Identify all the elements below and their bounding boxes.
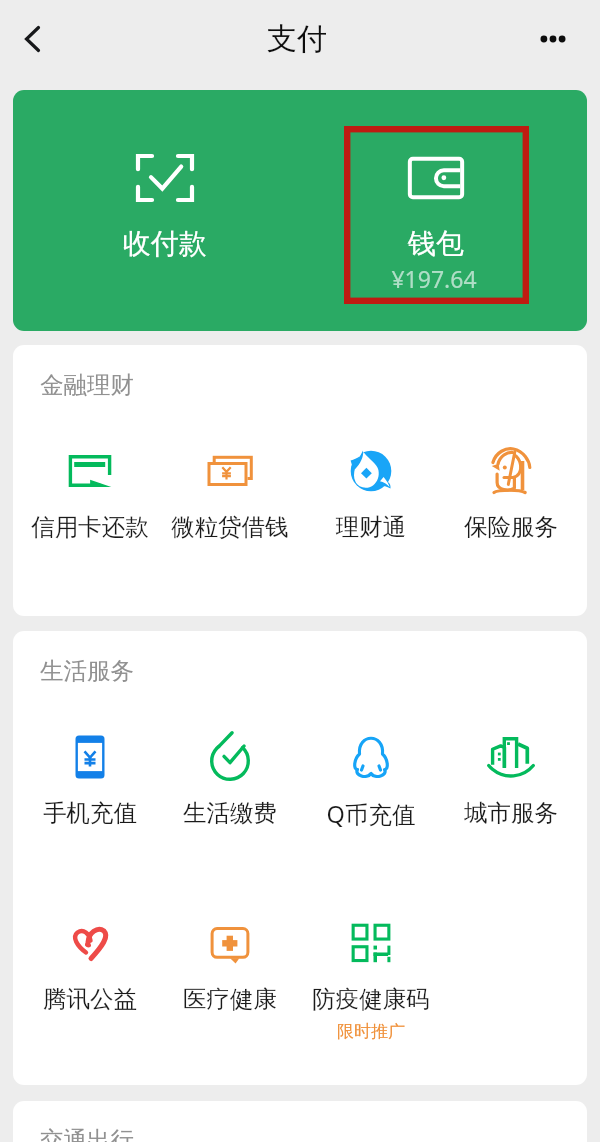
staticText: 微粒贷借钱: [160, 512, 300, 542]
button[interactable]: Q币充值: [301, 713, 441, 825]
button[interactable]: 医疗健康: [160, 899, 300, 1011]
staticText: 生活缴费: [160, 798, 300, 828]
staticText: 理财通: [301, 512, 441, 542]
staticText: ¥197.64: [364, 263, 504, 294]
button[interactable]: 信用卡还款: [20, 427, 160, 539]
button[interactable]: More options: [524, 10, 582, 68]
button[interactable]: 收付款: [13, 90, 300, 331]
button[interactable]: 交通出行: [13, 1101, 587, 1142]
button[interactable]: 微粒贷借钱: [160, 427, 300, 539]
staticText: 手机充值: [20, 798, 160, 828]
button[interactable]: 保险服务: [441, 427, 581, 539]
staticText: 生活服务: [40, 656, 134, 686]
button[interactable]: 理财通: [301, 427, 441, 539]
staticText: 防疫健康码: [301, 984, 441, 1014]
staticText: 腾讯公益: [20, 984, 160, 1014]
button[interactable]: Back: [4, 10, 62, 68]
button[interactable]: 腾讯公益: [20, 899, 160, 1011]
staticText: 限时推广: [301, 1021, 441, 1042]
staticText: 金融理财: [40, 370, 134, 400]
staticText: Q币充值: [301, 798, 441, 830]
staticText: 支付: [267, 20, 327, 58]
staticText: 收付款: [105, 226, 225, 261]
button[interactable]: 手机充值: [20, 713, 160, 825]
staticText: 城市服务: [441, 798, 581, 828]
staticText: 医疗健康: [160, 984, 300, 1014]
staticText: 交通出行: [40, 1125, 134, 1142]
button[interactable]: 生活缴费: [160, 713, 300, 825]
button[interactable]: 钱包: [300, 90, 587, 331]
button[interactable]: 城市服务: [441, 713, 581, 825]
button[interactable]: 防疫健康码: [301, 899, 441, 1011]
staticText: 信用卡还款: [20, 512, 160, 542]
staticText: 保险服务: [441, 512, 581, 542]
staticText: 钱包: [376, 226, 496, 261]
